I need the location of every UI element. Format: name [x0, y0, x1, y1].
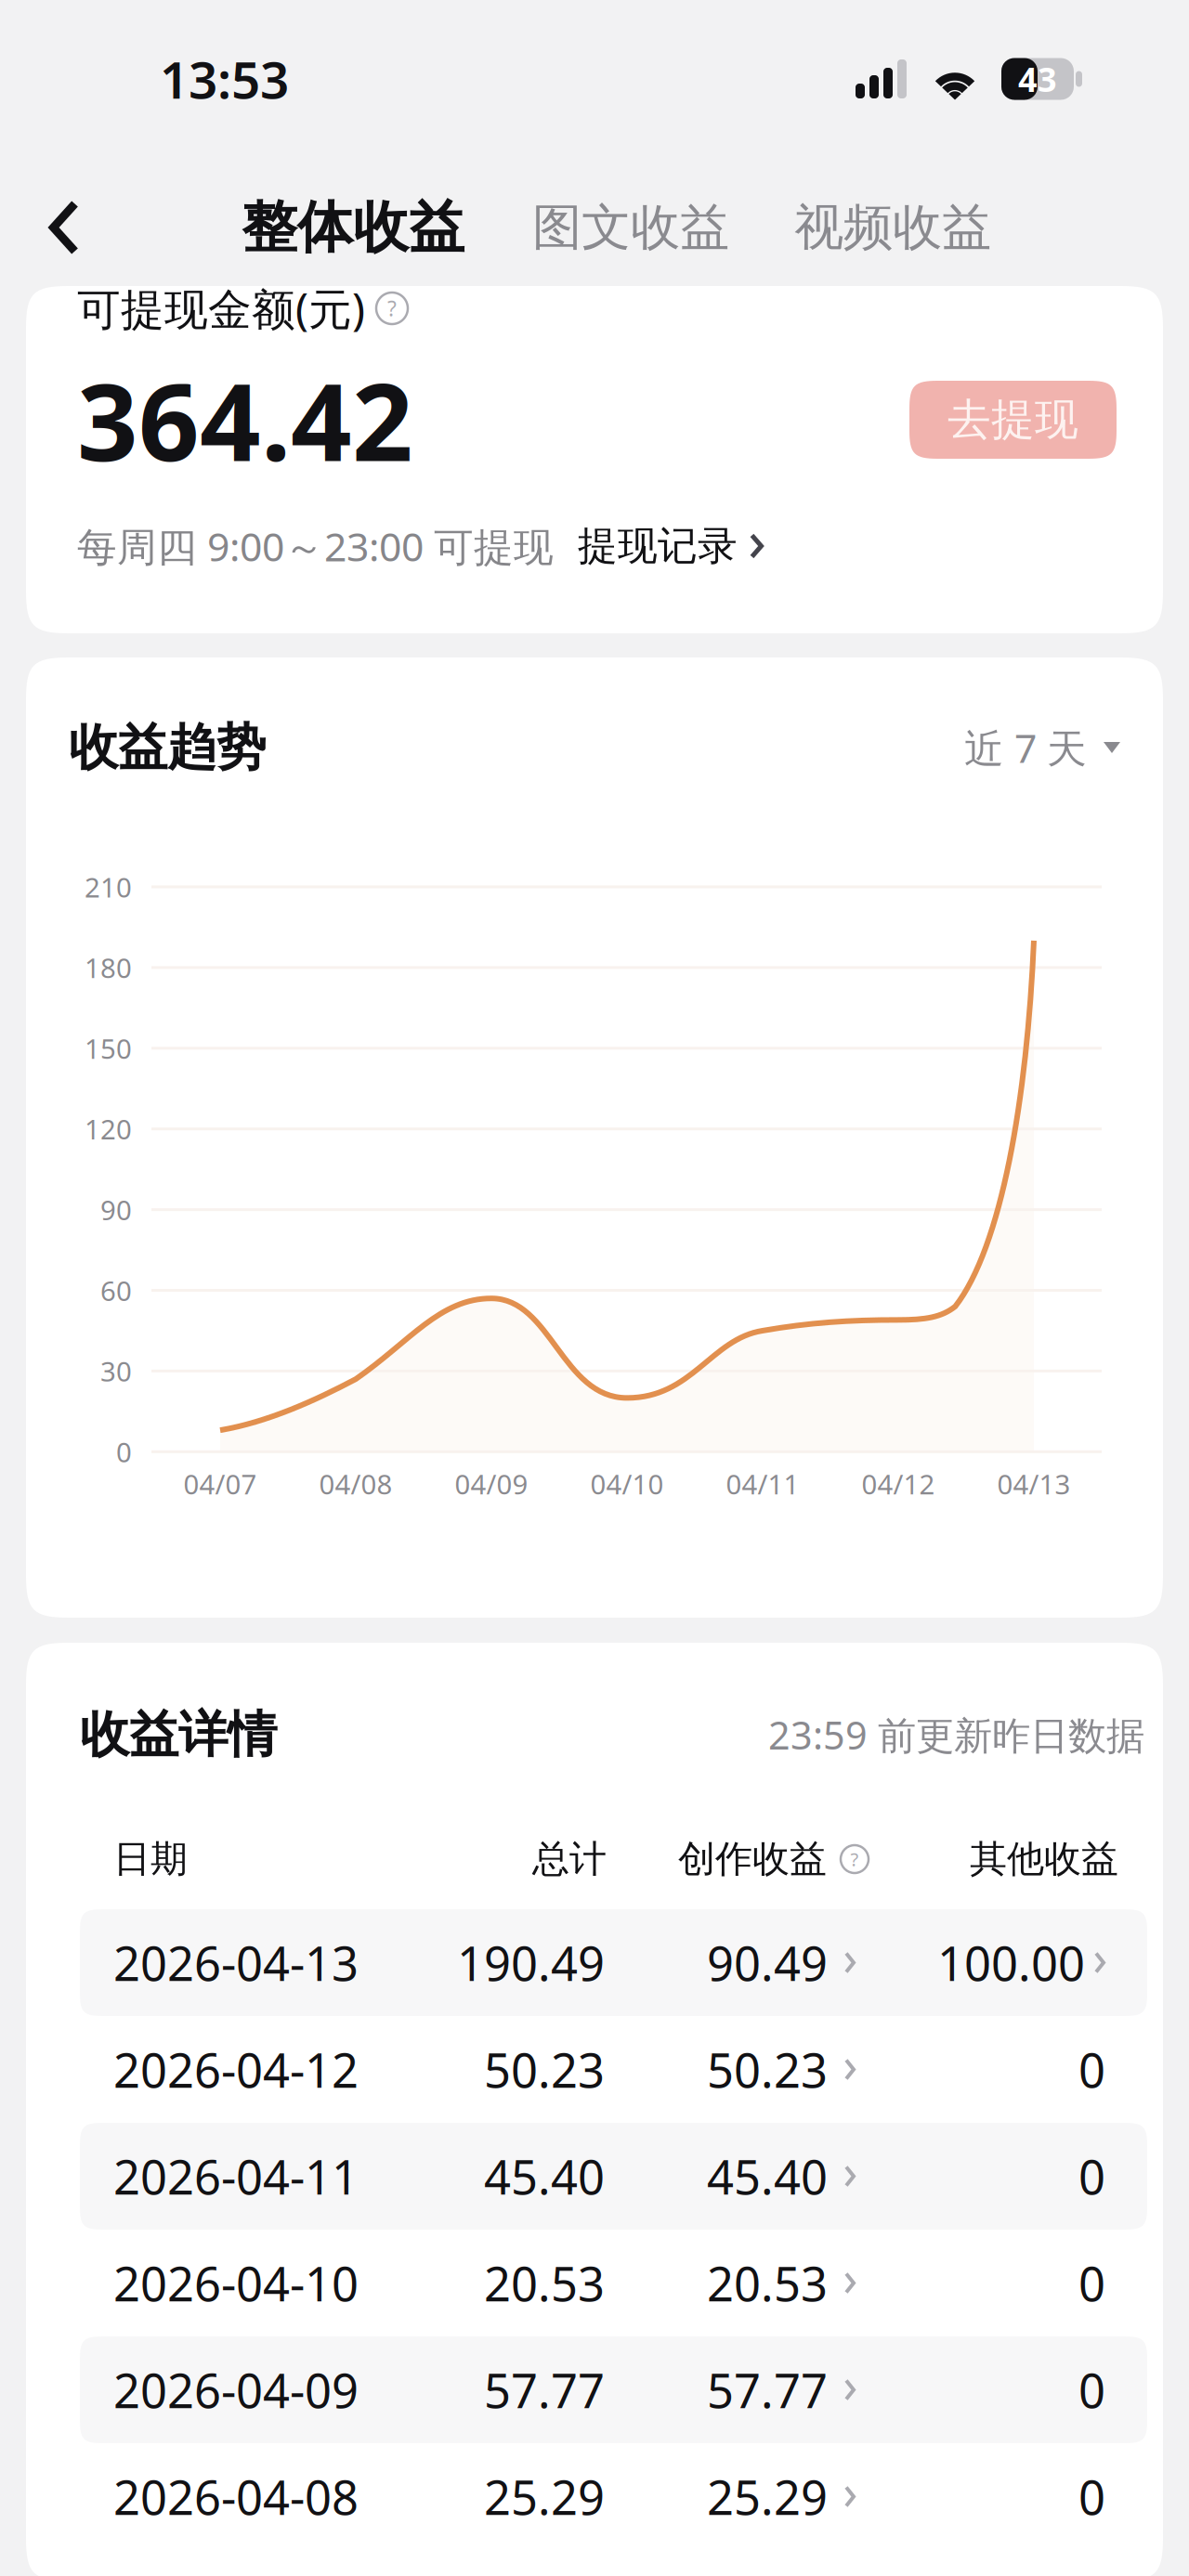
staticText: 57.77 [707, 2359, 828, 2421]
button[interactable]: 2026-04-12 [80, 2016, 1147, 2123]
button[interactable]: 视频收益 [794, 171, 991, 284]
button[interactable]: 2026-04-13 [80, 1909, 1147, 2016]
staticText: 25.29 [707, 2465, 828, 2528]
button[interactable]: 整体收益 [242, 171, 464, 284]
staticText: 04/11 [726, 1466, 799, 1502]
staticText: 23:59 前更新昨日数据 [768, 1709, 1144, 1760]
staticText: 45.40 [484, 2145, 605, 2208]
staticText: 50.23 [484, 2038, 605, 2101]
staticText: 可提现金额(元) [77, 280, 365, 337]
staticText: 0 [1078, 2359, 1105, 2421]
staticText: 210 [85, 869, 132, 905]
staticText: 2026-04-11 [113, 2145, 359, 2208]
staticText: 图文收益 [532, 197, 729, 258]
staticText: 90.49 [707, 1931, 828, 1994]
staticText: 04/09 [455, 1466, 528, 1502]
staticText: 创作收益 [678, 1836, 827, 1882]
staticText: 04/07 [183, 1466, 257, 1502]
staticText: 60 [100, 1272, 132, 1308]
button[interactable]: 去提现 [909, 381, 1117, 459]
staticText: ? [387, 294, 397, 322]
staticText: 收益趋势 [69, 717, 266, 778]
staticText: 提现记录 [578, 522, 738, 570]
button[interactable]: 图文收益 [532, 171, 729, 284]
staticText: 收益详情 [80, 1704, 277, 1765]
staticText: 120 [85, 1111, 132, 1147]
staticText: 2026-04-13 [113, 1931, 359, 1994]
staticText: 04/12 [862, 1466, 935, 1502]
staticText: 90 [100, 1192, 132, 1228]
staticText: 2026-04-08 [113, 2465, 359, 2528]
staticText: 0 [1078, 2145, 1105, 2208]
button[interactable]: Back [9, 171, 119, 284]
staticText: 364.42 [77, 349, 413, 490]
staticText: 0 [116, 1434, 132, 1470]
staticText: 180 [85, 949, 132, 986]
button[interactable]: 2026-04-08 [80, 2443, 1147, 2550]
staticText: 0 [1078, 2252, 1105, 2314]
staticText: 04/13 [997, 1466, 1071, 1502]
staticText: 近 7 天 [964, 721, 1087, 774]
staticText: 总计 [532, 1836, 607, 1882]
staticText: 04/10 [590, 1466, 664, 1502]
staticText: 30 [100, 1353, 132, 1389]
button[interactable]: 提现记录 [578, 522, 764, 570]
button[interactable]: 2026-04-11 [80, 2123, 1147, 2230]
staticText: 整体收益 [242, 193, 464, 262]
button[interactable]: 2026-04-09 [80, 2336, 1147, 2443]
staticText: 150 [85, 1030, 132, 1066]
staticText: 0 [1078, 2465, 1105, 2528]
staticText: 25.29 [484, 2465, 605, 2528]
staticText: 04/08 [319, 1466, 392, 1502]
staticText: 43 [1018, 57, 1057, 101]
staticText: 20.53 [484, 2252, 605, 2314]
button[interactable]: 近 7 天 [964, 721, 1120, 774]
staticText: 50.23 [707, 2038, 828, 2101]
staticText: 其他收益 [970, 1836, 1118, 1882]
staticText: 日期 [113, 1836, 188, 1882]
staticText: 视频收益 [794, 197, 991, 258]
staticText: 190.49 [457, 1931, 605, 1994]
staticText: ? [850, 1847, 859, 1871]
staticText: 20.53 [707, 2252, 828, 2314]
staticText: 100.00 [937, 1931, 1085, 1994]
staticText: 每周四 9:00～23:00 可提现 [77, 520, 554, 572]
staticText: 2026-04-10 [113, 2252, 359, 2314]
staticText: 2026-04-09 [113, 2359, 359, 2421]
staticText: 去提现 [947, 393, 1078, 446]
staticText: 57.77 [484, 2359, 605, 2421]
staticText: 45.40 [707, 2145, 828, 2208]
button[interactable]: 2026-04-10 [80, 2230, 1147, 2336]
staticText: 13:53 [160, 45, 289, 113]
staticText: 2026-04-12 [113, 2038, 359, 2101]
staticText: 0 [1078, 2038, 1105, 2101]
